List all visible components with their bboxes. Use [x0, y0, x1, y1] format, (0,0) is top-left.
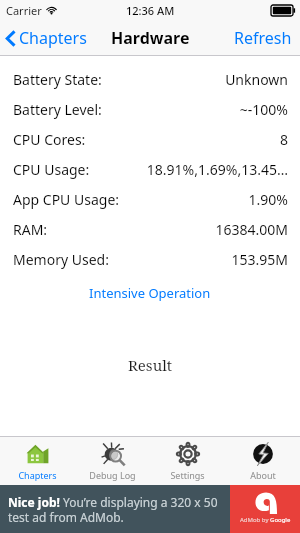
button[interactable]: About: [225, 437, 300, 485]
button[interactable]: Chapters: [0, 20, 93, 56]
staticText: Battery State:: [13, 70, 102, 89]
other: Chapters: [25, 441, 51, 467]
staticText: Refresh: [234, 27, 292, 49]
other: About: [250, 441, 276, 467]
staticText: Hardware: [111, 27, 190, 49]
button[interactable]: App CPU Usage:: [0, 184, 300, 214]
staticText: Memory Used:: [13, 250, 109, 269]
staticText: 8: [279, 130, 288, 149]
button[interactable]: Intensive Operation: [0, 280, 300, 306]
staticText: Carrier: [6, 3, 42, 18]
staticText: Settings: [170, 469, 205, 481]
staticText: Chapters: [19, 27, 87, 49]
button[interactable]: Battery Level:: [0, 94, 300, 124]
button[interactable]: Settings: [150, 437, 225, 485]
staticText: Unknown: [225, 70, 288, 89]
button[interactable]: RAM:: [0, 214, 300, 244]
other: Settings: [175, 441, 201, 467]
staticText: Nice job! You’re displaying a 320 x 50 t…: [8, 494, 226, 525]
button[interactable]: Refresh: [226, 20, 300, 56]
other: Debug Log: [100, 441, 126, 467]
staticText: RAM:: [13, 220, 48, 239]
staticText: App CPU Usage:: [13, 190, 120, 209]
staticText: Debug Log: [89, 469, 136, 481]
staticText: AdMob by Google: [240, 516, 291, 524]
staticText: 16384.00M: [215, 220, 288, 239]
button[interactable]: Memory Used:: [0, 244, 300, 274]
staticText: Intensive Operation: [89, 284, 211, 302]
button[interactable]: Battery State:: [0, 64, 300, 94]
button[interactable]: CPU Usage:: [0, 154, 300, 184]
staticText: CPU Cores:: [13, 130, 86, 149]
staticText: 12:36 AM: [126, 3, 175, 18]
staticText: Result: [128, 355, 173, 375]
button[interactable]: Chapters: [0, 437, 75, 485]
staticText: 153.95M: [231, 250, 288, 269]
button[interactable]: Debug Log: [75, 437, 150, 485]
staticText: Battery Level:: [13, 100, 102, 119]
button[interactable]: Nice job! You’re displaying a 320 x 50 t…: [0, 485, 300, 533]
staticText: 1.90%: [248, 190, 288, 209]
staticText: 18.91%,1.69%,13.45…: [146, 160, 288, 179]
staticText: ~-100%: [239, 100, 288, 119]
button[interactable]: CPU Cores:: [0, 124, 300, 154]
staticText: About: [250, 469, 276, 481]
staticText: CPU Usage:: [13, 160, 90, 179]
staticText: Chapters: [18, 469, 57, 481]
